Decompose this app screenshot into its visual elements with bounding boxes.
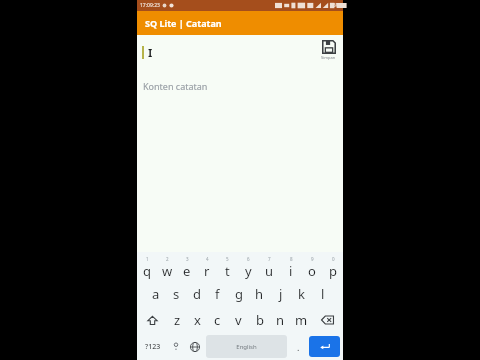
button[interactable]: 4: [197, 255, 217, 281]
button[interactable]: I: [142, 39, 319, 65]
button[interactable]: 8: [280, 255, 301, 281]
staticText: w: [162, 262, 173, 280]
button[interactable]: 2: [157, 255, 177, 281]
button[interactable]: 6: [238, 255, 259, 281]
button[interactable]: English: [206, 335, 287, 358]
button[interactable]: b: [249, 307, 270, 333]
staticText: f: [215, 285, 220, 303]
button[interactable]: j: [270, 281, 291, 307]
button[interactable]: 0: [322, 255, 343, 281]
button[interactable]: h: [249, 281, 270, 307]
staticText: ?123: [145, 342, 161, 352]
staticText: I: [148, 45, 153, 60]
staticText: SQ Lite | Catatan: [145, 17, 222, 29]
button[interactable]: Change language: [185, 335, 204, 358]
button[interactable]: k: [291, 281, 312, 307]
staticText: 1: [146, 256, 149, 262]
staticText: b: [256, 311, 264, 329]
button[interactable]: 5: [217, 255, 238, 281]
staticText: 8: [290, 256, 293, 262]
staticText: c: [214, 311, 221, 329]
staticText: Simpan: [321, 55, 336, 60]
staticText: l: [321, 285, 325, 303]
button[interactable]: f: [207, 281, 228, 307]
staticText: h: [255, 285, 264, 303]
staticText: u: [265, 262, 274, 280]
button[interactable]: Backspace: [312, 307, 343, 333]
staticText: z: [174, 311, 181, 329]
button[interactable]: 1: [137, 255, 157, 281]
staticText: m: [295, 311, 308, 329]
button[interactable]: .: [289, 335, 308, 358]
staticText: v: [235, 311, 242, 329]
button[interactable]: Konten catatan: [143, 77, 337, 95]
button[interactable]: g: [228, 281, 249, 307]
button[interactable]: Simpan: [319, 39, 338, 61]
staticText: q: [143, 262, 151, 280]
staticText: 0: [332, 256, 335, 262]
staticText: i: [289, 262, 293, 280]
button[interactable]: ?123: [139, 335, 166, 358]
button[interactable]: l: [312, 281, 333, 307]
staticText: 7: [268, 256, 271, 262]
button[interactable]: c: [207, 307, 228, 333]
staticText: 3: [186, 256, 189, 262]
button[interactable]: Enter: [309, 336, 340, 357]
staticText: x: [194, 311, 201, 329]
button[interactable]: 3: [177, 255, 197, 281]
staticText: 4: [206, 256, 209, 262]
staticText: n: [276, 311, 285, 329]
staticText: e: [183, 262, 191, 280]
staticText: English: [236, 343, 257, 351]
button[interactable]: 7: [259, 255, 280, 281]
staticText: Konten catatan: [143, 80, 208, 92]
staticText: p: [329, 262, 337, 280]
button[interactable]: Shift: [137, 307, 167, 333]
staticText: a: [152, 285, 160, 303]
staticText: s: [173, 285, 180, 303]
staticText: .: [297, 341, 300, 353]
staticText: 9: [311, 256, 314, 262]
staticText: 2: [166, 256, 169, 262]
staticText: k: [298, 285, 305, 303]
staticText: 96%: [330, 2, 340, 9]
staticText: 5: [226, 256, 229, 262]
staticText: y: [245, 262, 252, 280]
staticText: r: [204, 262, 210, 280]
staticText: 6: [247, 256, 250, 262]
button[interactable]: v: [228, 307, 249, 333]
button[interactable]: n: [270, 307, 291, 333]
button[interactable]: z: [167, 307, 187, 333]
button[interactable]: x: [187, 307, 207, 333]
staticText: t: [225, 262, 230, 280]
staticText: g: [235, 285, 243, 303]
button[interactable]: m: [291, 307, 312, 333]
button[interactable]: d: [186, 281, 207, 307]
staticText: o: [308, 262, 316, 280]
button[interactable]: 9: [301, 255, 322, 281]
staticText: d: [193, 285, 201, 303]
button[interactable]: a: [146, 281, 166, 307]
staticText: 17:09:23: [140, 2, 160, 9]
button[interactable]: Emoji: [166, 335, 185, 358]
button[interactable]: s: [166, 281, 186, 307]
staticText: j: [279, 285, 283, 303]
